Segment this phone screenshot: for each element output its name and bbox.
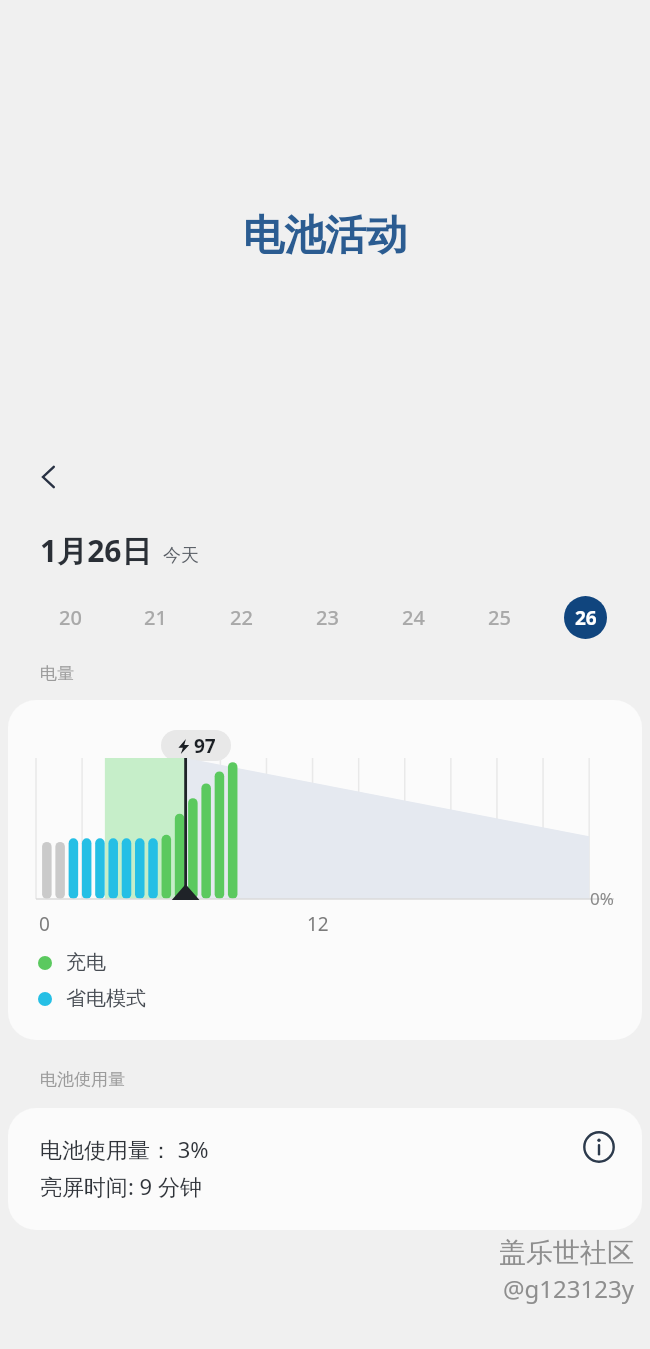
- button[interactable]: 97: [8, 700, 642, 1040]
- staticText: 26: [575, 605, 597, 631]
- button[interactable]: 25: [456, 588, 542, 646]
- staticText: 今天: [163, 544, 199, 567]
- staticText: 电池使用量: [40, 1069, 125, 1090]
- staticText: 24: [402, 604, 425, 631]
- button[interactable]: 20: [28, 588, 113, 646]
- staticText: 1月26日: [40, 530, 152, 571]
- staticText: 充电: [66, 950, 106, 975]
- staticText: 20: [59, 604, 82, 631]
- button[interactable]: 23: [284, 588, 370, 646]
- button[interactable]: Back: [18, 446, 80, 508]
- staticText: 省电模式: [66, 986, 146, 1011]
- staticText: 21: [144, 604, 167, 631]
- staticText: @g123123y: [503, 1272, 634, 1305]
- staticText: 22: [230, 604, 253, 631]
- staticText: 电量: [40, 663, 74, 684]
- staticText: 亮屏时间: 9 分钟: [40, 1171, 202, 1201]
- button[interactable]: 21: [113, 588, 198, 646]
- staticText: 0%: [590, 887, 614, 910]
- button[interactable]: 24: [370, 588, 456, 646]
- button[interactable]: 电池使用量： 3%: [8, 1108, 642, 1230]
- staticText: 23: [316, 604, 339, 631]
- button[interactable]: 26: [542, 588, 628, 646]
- staticText: 0: [39, 911, 50, 937]
- staticText: 97: [194, 733, 216, 759]
- button[interactable]: 22: [198, 588, 284, 646]
- staticText: 25: [488, 604, 511, 631]
- staticText: 12: [307, 911, 329, 937]
- staticText: 盖乐世社区: [499, 1236, 634, 1270]
- button[interactable]: Information: [574, 1122, 624, 1172]
- staticText: 电池使用量： 3%: [40, 1134, 209, 1164]
- staticText: 电池活动: [0, 210, 650, 262]
